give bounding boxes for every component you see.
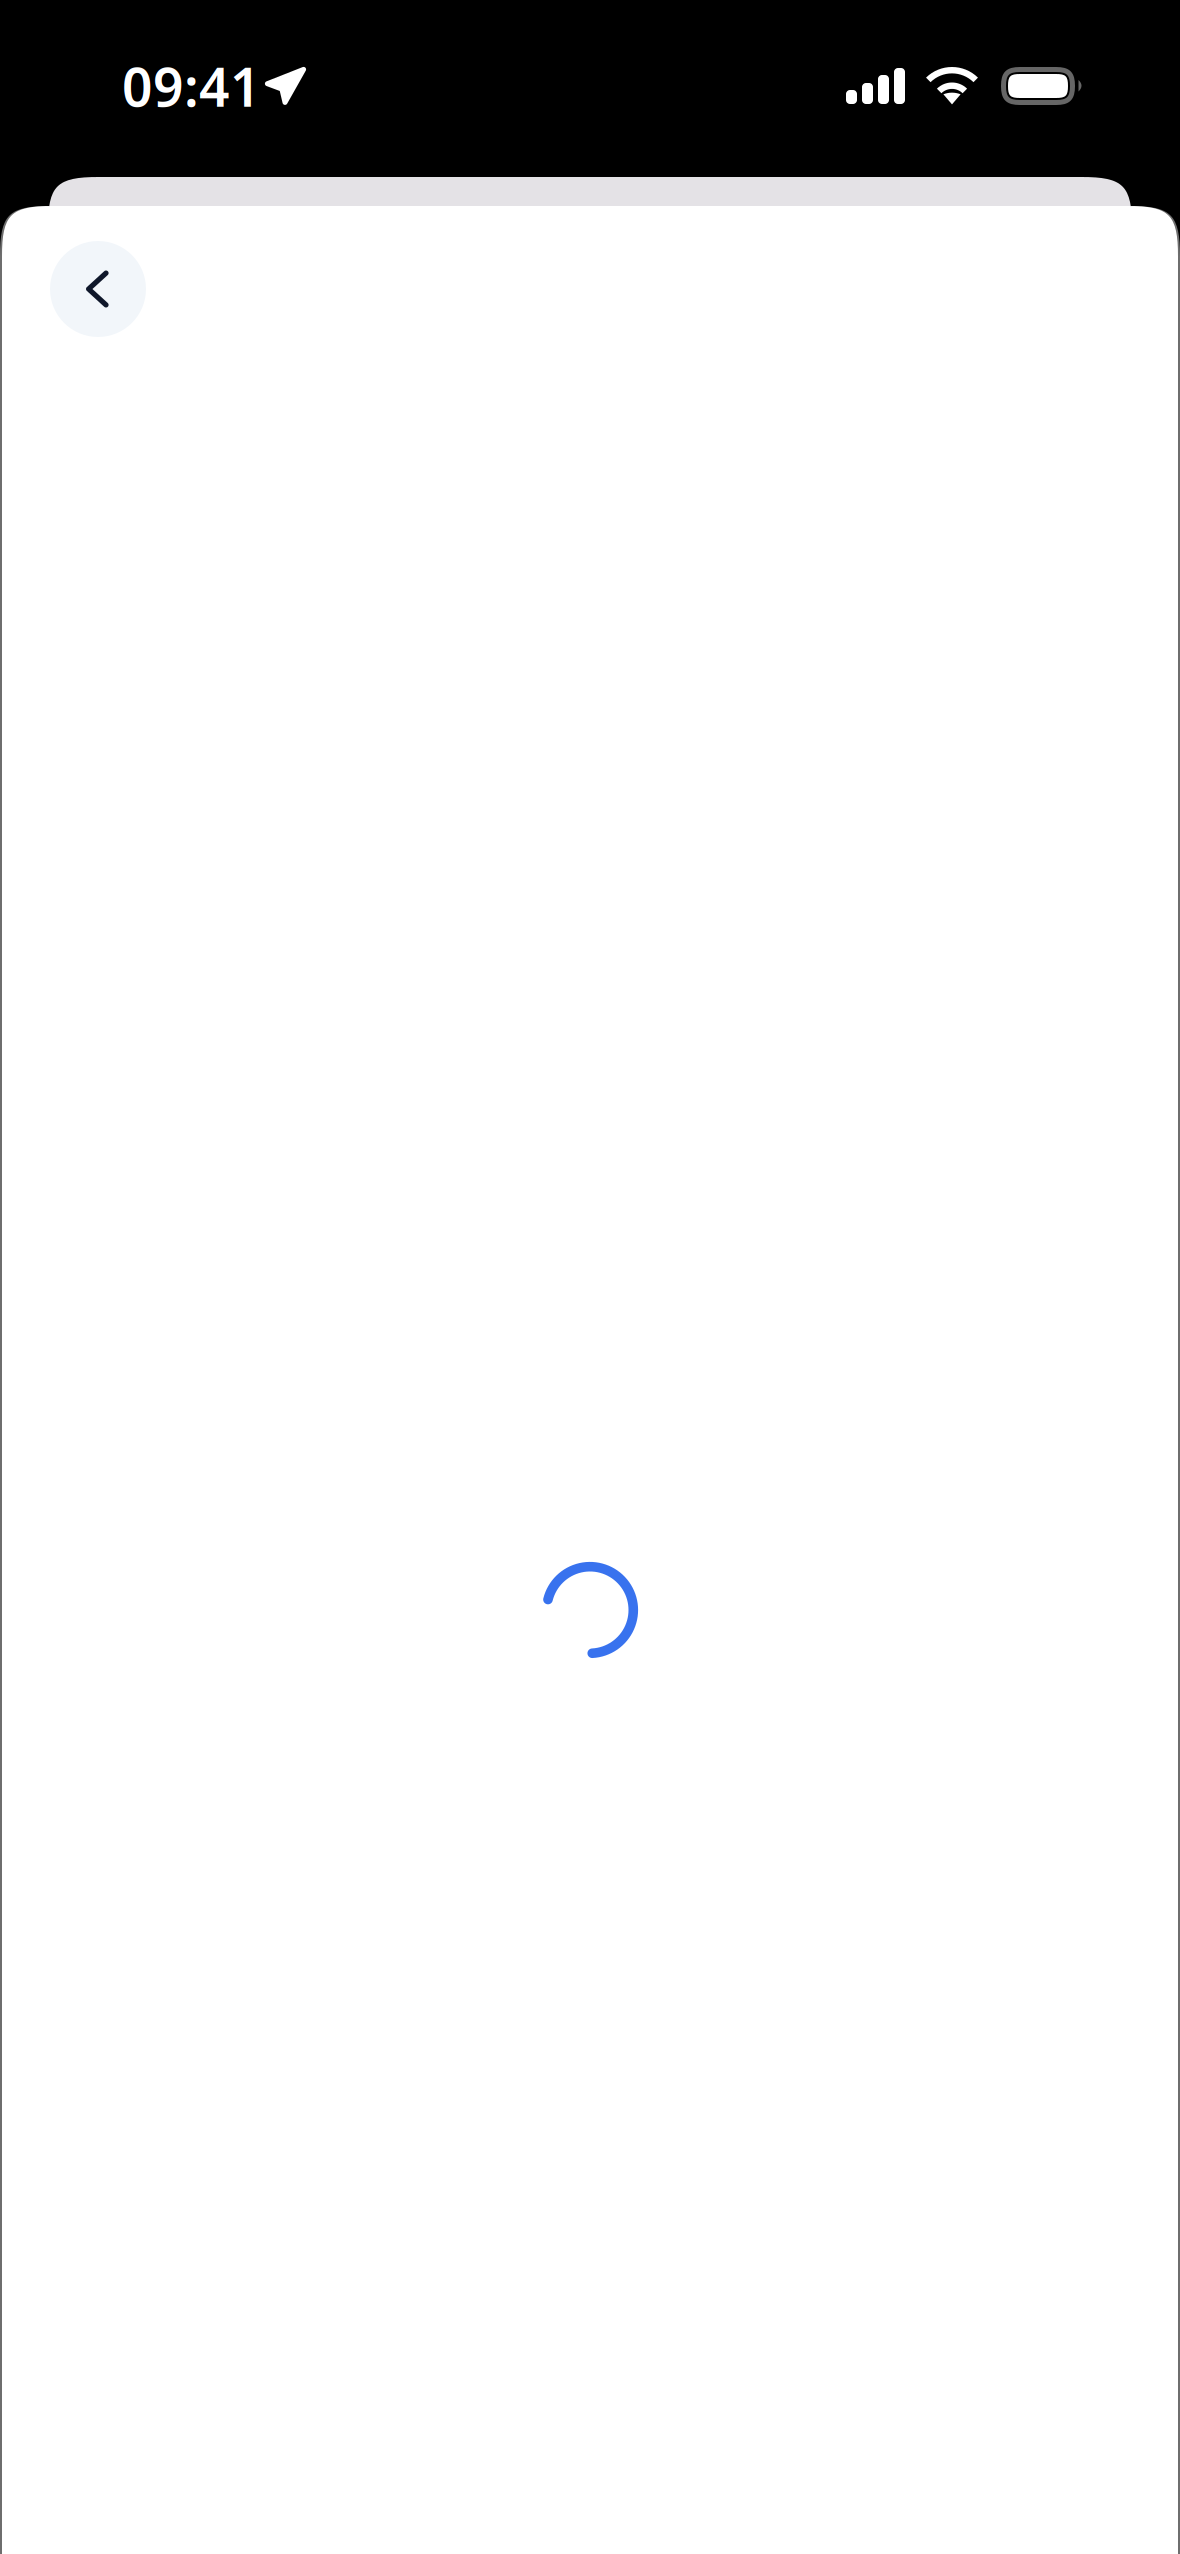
button[interactable]: Back (50, 241, 146, 337)
staticText: 09:41 (122, 51, 261, 121)
